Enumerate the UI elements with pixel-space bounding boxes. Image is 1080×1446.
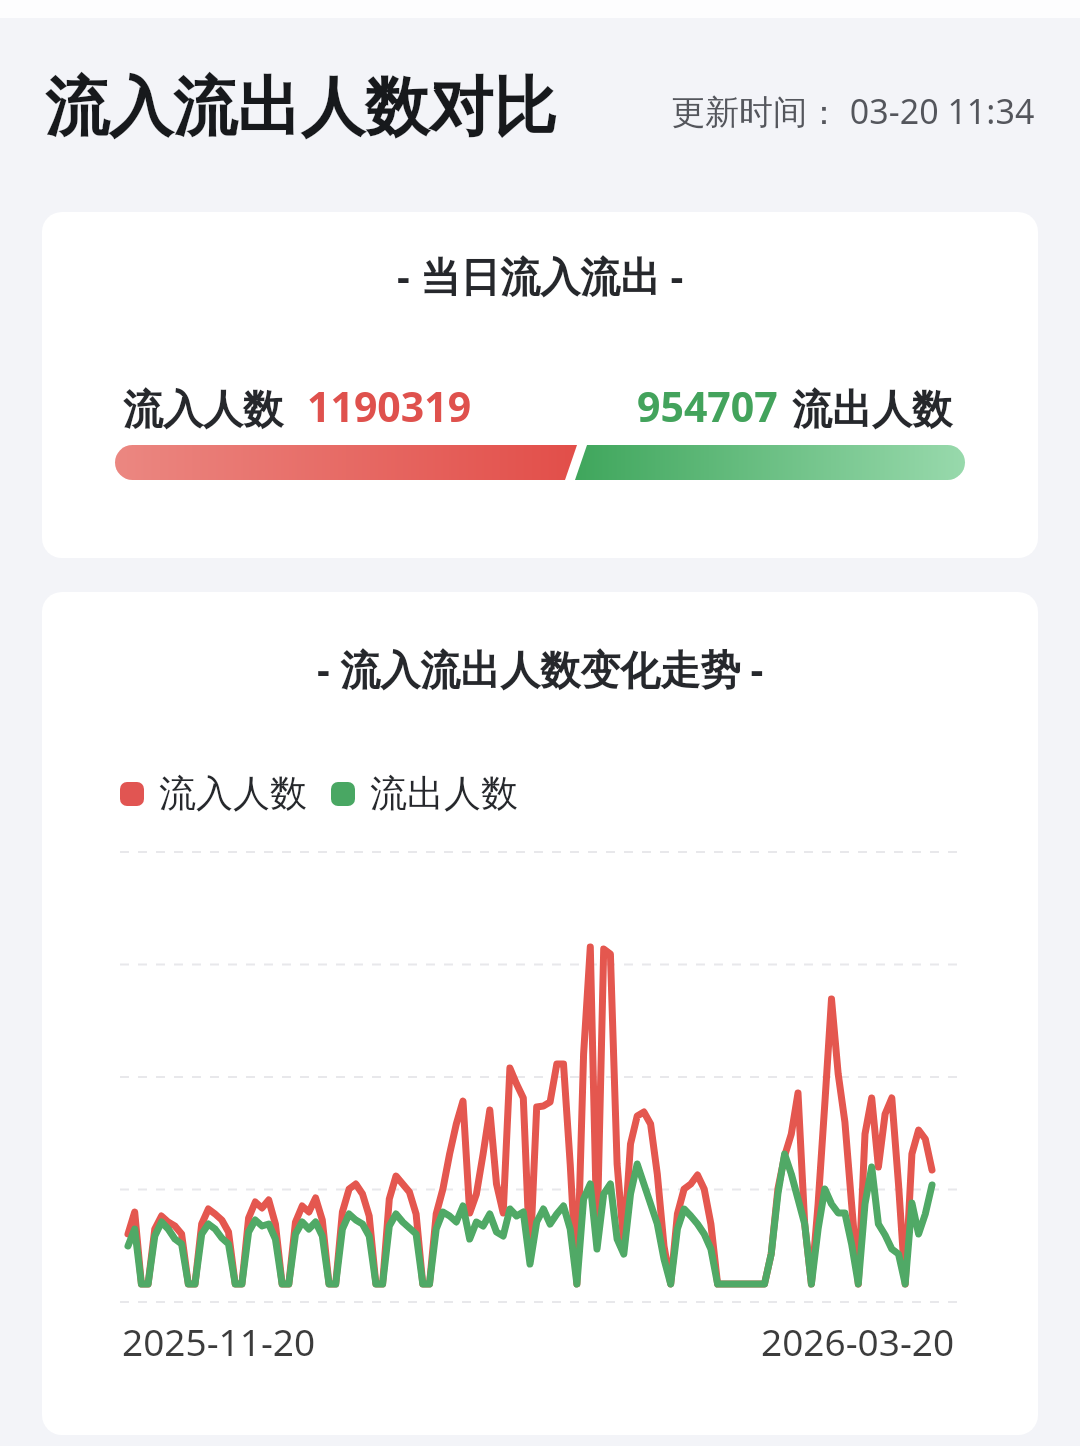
staticText: 流出人数 — [792, 384, 952, 434]
button[interactable]: 流入人数 — [120, 770, 307, 817]
staticText: - 流入流出人数变化走势 - — [317, 641, 764, 696]
staticText: 流入流出人数对比 — [45, 67, 557, 148]
staticText: 流入人数 — [159, 770, 307, 817]
staticText: 1190319 — [307, 378, 472, 434]
button[interactable]: 流出人数 — [331, 770, 518, 817]
staticText: 2025-11-20 — [122, 1316, 316, 1366]
staticText: - 当日流入流出 - — [397, 248, 684, 303]
staticText: 流入人数 — [123, 384, 283, 434]
staticText: 2026-03-20 — [761, 1316, 955, 1366]
staticText: 更新时间： 03-20 11:34 — [671, 88, 1035, 134]
staticText: 954707 — [637, 378, 778, 434]
staticText: 流出人数 — [370, 770, 518, 817]
